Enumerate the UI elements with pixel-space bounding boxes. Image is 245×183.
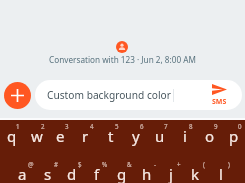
button[interactable]: 3	[48, 115, 73, 153]
button[interactable]: 1	[0, 115, 24, 153]
button[interactable]: (	[183, 153, 208, 183]
staticText: 3	[65, 122, 69, 130]
staticText: r	[82, 126, 89, 146]
staticText: SMS	[212, 97, 227, 107]
staticText: p	[229, 126, 239, 146]
staticText: @	[28, 160, 34, 168]
staticText: f	[94, 164, 100, 183]
staticText: (	[203, 160, 205, 168]
button[interactable]: @	[10, 153, 35, 183]
button[interactable]: %	[84, 153, 109, 183]
staticText: %	[102, 160, 108, 168]
staticText: g	[117, 164, 127, 183]
staticText: Conversation with 123 · Jun 2, 8:00 AM	[0, 54, 245, 65]
staticText: l	[219, 164, 223, 183]
staticText: 6	[140, 122, 144, 130]
staticText: 0	[238, 122, 242, 130]
button[interactable]: #	[35, 153, 60, 183]
staticText: 1	[16, 122, 20, 130]
staticText: 2	[41, 122, 45, 130]
button[interactable]: 5	[98, 115, 123, 153]
button[interactable]: 8	[172, 115, 197, 153]
staticText: u	[155, 126, 165, 146]
staticText: j	[169, 164, 173, 183]
staticText: )	[228, 160, 230, 168]
staticText: 5	[115, 122, 119, 130]
button[interactable]: $	[59, 153, 84, 183]
staticText: a	[18, 164, 27, 183]
staticText: e	[56, 126, 65, 146]
staticText: #	[54, 160, 58, 168]
staticText: 8	[189, 122, 193, 130]
button[interactable]: 0	[221, 115, 245, 153]
staticText: &	[127, 160, 132, 168]
staticText: w	[31, 126, 43, 146]
button[interactable]: 9	[197, 115, 222, 153]
staticText: $	[78, 160, 82, 168]
staticText: t	[108, 126, 114, 146]
button[interactable]: +	[158, 153, 183, 183]
button[interactable]: )	[208, 153, 233, 183]
button[interactable]: Send SMS	[202, 80, 236, 110]
staticText: q	[7, 126, 17, 146]
staticText: o	[205, 126, 215, 146]
staticText: d	[67, 164, 77, 183]
staticText: i	[183, 126, 187, 146]
staticText: Custom background color	[47, 88, 171, 102]
button[interactable]: -	[134, 153, 159, 183]
staticText: 9	[214, 122, 218, 130]
staticText: k	[191, 164, 200, 183]
staticText: +	[177, 160, 181, 168]
button[interactable]: &	[109, 153, 134, 183]
staticText: 7	[164, 122, 168, 130]
staticText: -	[154, 160, 156, 168]
button[interactable]: 7	[147, 115, 172, 153]
button[interactable]: Add attachment	[4, 82, 31, 109]
button[interactable]: 4	[73, 115, 98, 153]
button[interactable]: 2	[24, 115, 49, 153]
staticText: s	[44, 164, 52, 183]
staticText: h	[142, 164, 152, 183]
staticText: y	[132, 126, 140, 146]
staticText: 4	[90, 122, 94, 130]
button[interactable]: 6	[123, 115, 148, 153]
